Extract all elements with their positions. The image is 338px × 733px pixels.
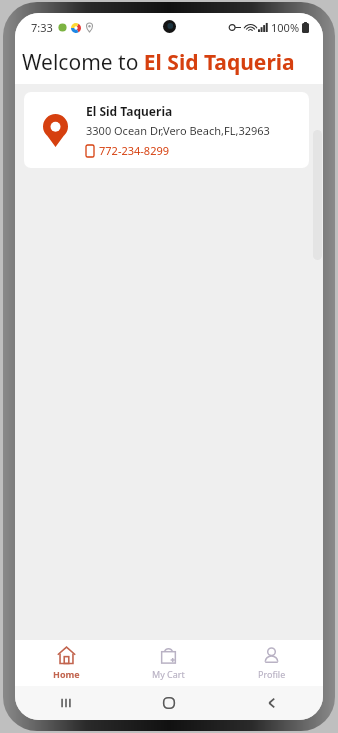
staticText: El Sid Taqueria xyxy=(86,103,173,119)
button[interactable]: Home xyxy=(15,640,117,686)
button[interactable]: My Cart xyxy=(117,640,220,686)
staticText: Home xyxy=(53,668,80,680)
staticText: 772-234-8299 xyxy=(99,143,170,158)
staticText: 100% xyxy=(271,20,300,35)
button[interactable]: Home xyxy=(162,696,176,710)
staticText: Welcome to El Sid Taqueria xyxy=(22,48,295,77)
staticText: 7:33 xyxy=(31,20,53,35)
staticText: 3300 Ocean Dr,Vero Beach,FL,32963 xyxy=(86,123,270,138)
button[interactable]: Back xyxy=(265,696,279,710)
staticText: Profile xyxy=(258,668,286,680)
button[interactable]: Recents xyxy=(59,696,73,710)
button[interactable]: El Sid Taqueria xyxy=(24,92,309,168)
button[interactable]: Profile xyxy=(220,640,323,686)
staticText: My Cart xyxy=(152,668,185,680)
